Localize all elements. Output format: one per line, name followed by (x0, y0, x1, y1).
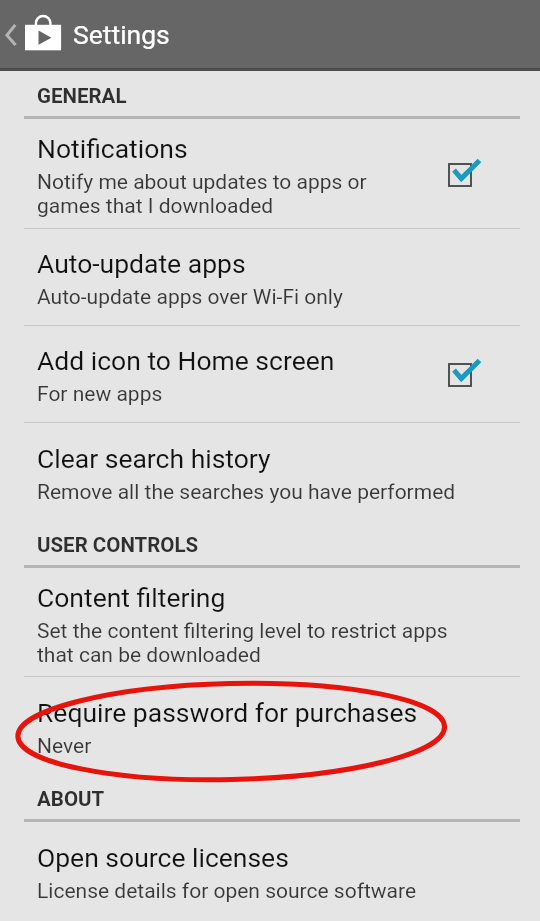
staticText: Auto-update apps (37, 248, 246, 279)
staticText: Notifications (37, 133, 188, 164)
staticText: Notify me about updates to apps or games… (37, 170, 367, 218)
button[interactable]: Add icon to Home screen (0, 326, 540, 422)
staticText: ABOUT (37, 787, 105, 811)
button[interactable]: Auto-update apps (0, 229, 540, 325)
staticText: Open source licenses (37, 842, 289, 873)
button[interactable]: Content filtering (0, 568, 540, 676)
staticText: Clear search history (37, 443, 271, 474)
button[interactable]: Open source licenses (0, 822, 540, 921)
staticText: Require password for purchases (37, 697, 418, 728)
staticText: For new apps (37, 382, 163, 406)
staticText: Set the content filtering level to restr… (37, 619, 448, 667)
staticText: USER CONTROLS (37, 533, 199, 557)
button[interactable]: Require password for purchases (0, 677, 540, 774)
button[interactable]: Navigate up (0, 0, 62, 68)
staticText: Add icon to Home screen (37, 345, 335, 376)
button[interactable]: Clear search history (0, 423, 540, 520)
staticText: Auto-update apps over Wi-Fi only (37, 285, 343, 309)
staticText: Remove all the searches you have perform… (37, 480, 456, 504)
staticText: Never (37, 734, 92, 758)
staticText: Settings (73, 19, 170, 50)
button[interactable]: Notifications (0, 119, 540, 228)
staticText: GENERAL (37, 84, 127, 108)
staticText: License details for open source software (37, 879, 417, 903)
staticText: Content filtering (37, 582, 226, 613)
